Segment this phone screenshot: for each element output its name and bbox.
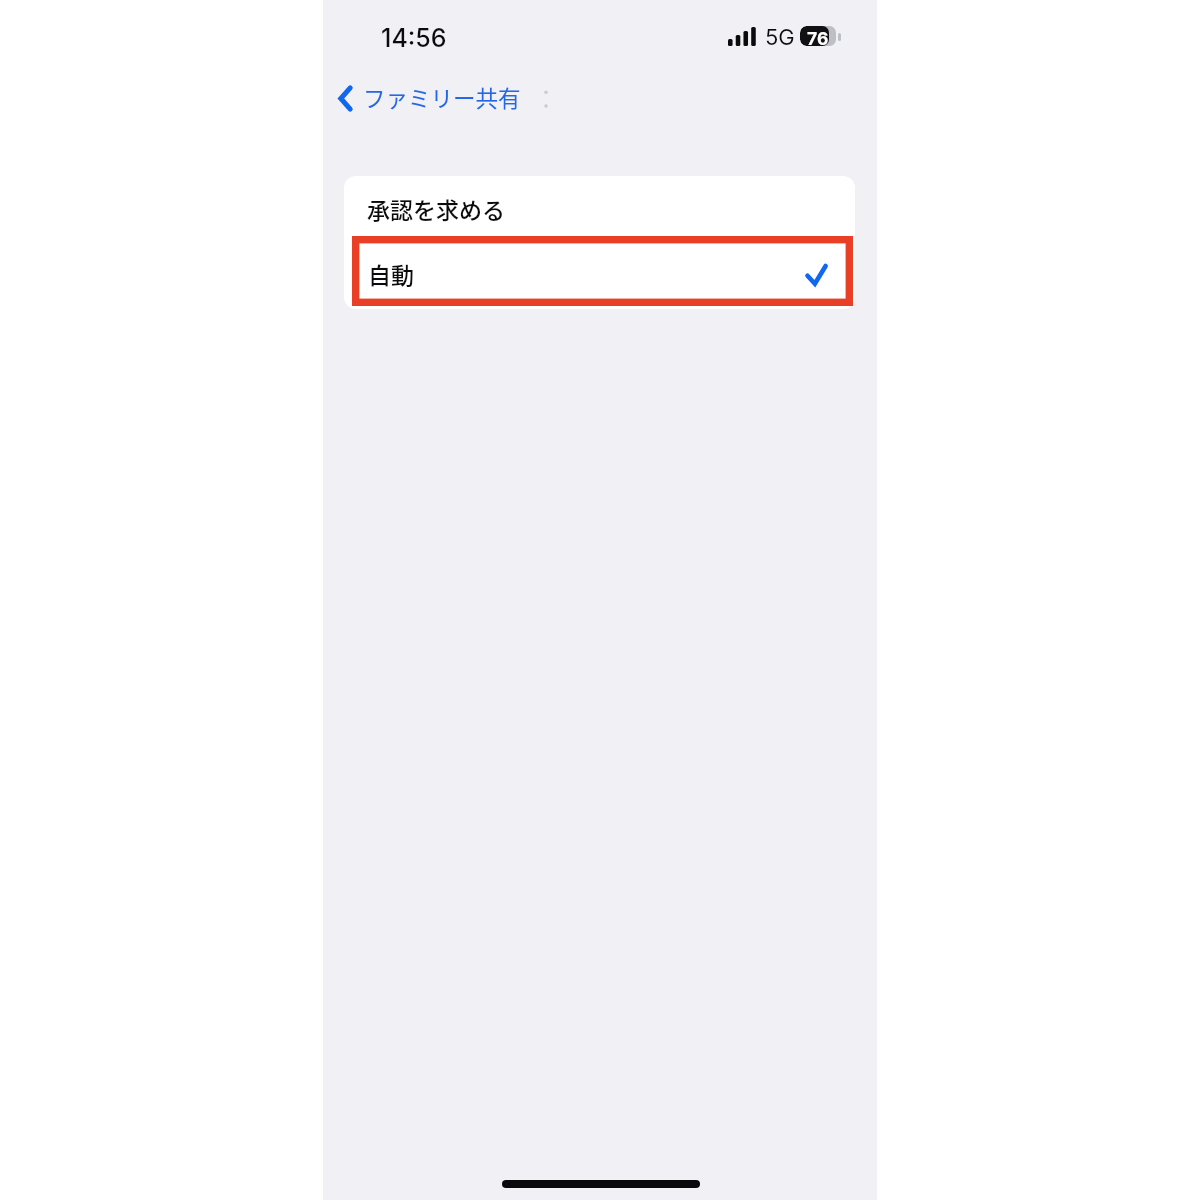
- staticText: 76: [807, 28, 829, 46]
- other: Selected: [803, 262, 828, 286]
- button[interactable]: Back to ファミリー共有: [331, 74, 521, 120]
- button[interactable]: 承認を求める: [344, 176, 855, 240]
- staticText: 14:56: [381, 23, 447, 53]
- other: Battery 76 percent: [800, 26, 842, 47]
- staticText: 自動: [368, 257, 414, 290]
- staticText: 5G: [765, 24, 795, 51]
- staticText: 承認を求める: [367, 192, 505, 225]
- staticText: ファミリー共有: [363, 81, 521, 114]
- button[interactable]: 自動: [344, 240, 855, 309]
- other: Cellular signal, 4 bars: [728, 27, 756, 46]
